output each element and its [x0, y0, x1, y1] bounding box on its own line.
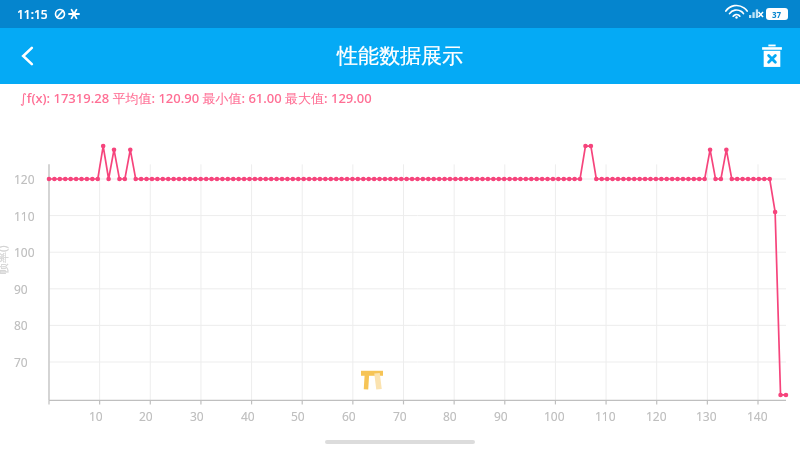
staticText: 10 — [89, 408, 103, 424]
staticText: 130 — [696, 408, 717, 424]
staticText: 70 — [14, 354, 28, 370]
staticText: 100 — [14, 244, 35, 260]
button[interactable]: Delete — [744, 28, 800, 84]
staticText: 110 — [14, 208, 35, 224]
staticText: 90 — [14, 281, 28, 297]
staticText: 37 — [772, 9, 782, 20]
staticText: Time(s) — [392, 427, 433, 443]
staticText: 120 — [14, 171, 35, 187]
staticText: 性能数据展示 — [337, 43, 463, 69]
staticText: 80 — [14, 317, 28, 333]
staticText: 20 — [139, 408, 153, 424]
staticText: 70 — [393, 408, 407, 424]
staticText: 100 — [544, 408, 565, 424]
staticText: 11:15 — [17, 6, 48, 22]
staticText: 帧率() — [0, 245, 10, 274]
staticText: 80 — [443, 408, 457, 424]
staticText: 120 — [646, 408, 667, 424]
staticText: 140 — [747, 408, 768, 424]
staticText: 110 — [595, 408, 616, 424]
staticText: 60 — [342, 408, 356, 424]
staticText: 90 — [494, 408, 508, 424]
staticText: ∫f(x): 17319.28 平均值: 120.90 最小值: 61.00 最… — [20, 89, 372, 107]
button[interactable]: Back — [0, 28, 56, 84]
staticText: 30 — [190, 408, 204, 424]
staticText: 50 — [291, 408, 305, 424]
staticText: 40 — [241, 408, 255, 424]
